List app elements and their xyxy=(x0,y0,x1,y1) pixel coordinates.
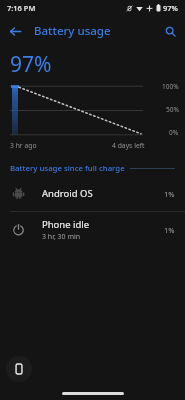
staticText: 4 days left xyxy=(112,141,145,150)
button[interactable]: Search xyxy=(155,16,185,46)
staticText: Phone idle xyxy=(42,218,90,231)
staticText: 3 hr, 30 min xyxy=(42,232,81,242)
button[interactable]: Device overlay xyxy=(6,356,32,382)
staticText: Battery usage since full charge xyxy=(10,163,125,174)
staticText: 100% xyxy=(162,82,179,91)
staticText: 0% xyxy=(169,128,179,137)
staticText: 50% xyxy=(166,105,179,114)
button[interactable]: Back xyxy=(0,16,30,46)
staticText: 1% xyxy=(164,225,175,235)
staticText: 7:16 PM xyxy=(7,3,36,13)
staticText: 97% xyxy=(10,50,52,79)
staticText: 1% xyxy=(164,189,175,199)
button[interactable]: Phone idle xyxy=(0,212,185,247)
staticText: Android OS xyxy=(42,187,93,200)
staticText: 3 hr ago xyxy=(10,141,37,150)
button[interactable]: Android OS xyxy=(0,176,185,211)
staticText: Battery usage xyxy=(34,23,111,39)
staticText: 97% xyxy=(163,3,178,13)
